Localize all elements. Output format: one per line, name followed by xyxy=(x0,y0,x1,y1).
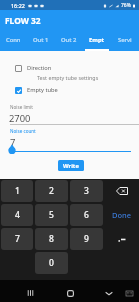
staticText: 9 xyxy=(84,233,89,245)
staticText: Conn xyxy=(6,36,21,44)
staticText: Empty tube xyxy=(27,86,58,94)
staticText: FLOW 32 xyxy=(5,15,41,26)
button[interactable]: Out 2 xyxy=(55,30,83,51)
button[interactable]: Empty tube xyxy=(0,82,139,98)
staticText: 2700 xyxy=(9,112,31,125)
staticText: Empt xyxy=(89,36,105,44)
staticText: 5 xyxy=(49,209,54,221)
button[interactable]: 0 xyxy=(35,252,68,274)
button[interactable]: 5 xyxy=(35,204,68,226)
staticText: 1 xyxy=(15,185,20,197)
staticText: Out 2 xyxy=(61,36,77,44)
button[interactable]: Hide keyboard xyxy=(100,282,118,302)
staticText: Done xyxy=(112,210,132,220)
button[interactable]: Dot and minus xyxy=(105,228,138,250)
staticText: 16:22 xyxy=(11,2,25,9)
button[interactable]: Recent apps xyxy=(21,282,39,302)
staticText: Out 1 xyxy=(33,36,49,44)
staticText: Direction xyxy=(27,64,52,72)
button[interactable]: Done xyxy=(105,204,138,226)
button[interactable]: Conn xyxy=(0,30,27,51)
button[interactable]: 1 xyxy=(1,180,33,202)
button[interactable]: Direction xyxy=(0,60,139,76)
button[interactable]: Write xyxy=(58,160,84,171)
button[interactable]: Home xyxy=(61,282,79,302)
button[interactable]: Servi xyxy=(111,30,139,51)
button[interactable]: 8 xyxy=(35,228,68,250)
button[interactable]: 9 xyxy=(70,228,103,250)
staticText: 0 xyxy=(49,257,54,269)
button[interactable]: 6 xyxy=(70,204,103,226)
staticText: 8 xyxy=(49,233,54,245)
staticText: 76% xyxy=(121,2,131,9)
staticText: Servi xyxy=(118,36,132,44)
button[interactable]: 7 xyxy=(1,228,33,250)
button[interactable]: Backspace xyxy=(105,180,138,202)
button[interactable]: 2 xyxy=(35,180,68,202)
staticText: 6 xyxy=(84,209,89,221)
button[interactable]: 3 xyxy=(70,180,103,202)
staticText: Test empty tube settings xyxy=(37,74,99,81)
staticText: Noise limit xyxy=(10,104,33,110)
staticText: 7 xyxy=(15,233,20,245)
staticText: Write xyxy=(63,162,79,170)
button[interactable]: Out 1 xyxy=(27,30,55,51)
staticText: 4 xyxy=(15,209,20,221)
staticText: Noise count xyxy=(10,128,36,134)
button[interactable]: Empt xyxy=(83,30,111,51)
staticText: 3 xyxy=(84,185,89,197)
staticText: 2 xyxy=(49,185,54,197)
staticText: 7 xyxy=(10,136,16,149)
button[interactable]: 4 xyxy=(1,204,33,226)
button[interactable]: Switch keyboard xyxy=(123,282,135,302)
